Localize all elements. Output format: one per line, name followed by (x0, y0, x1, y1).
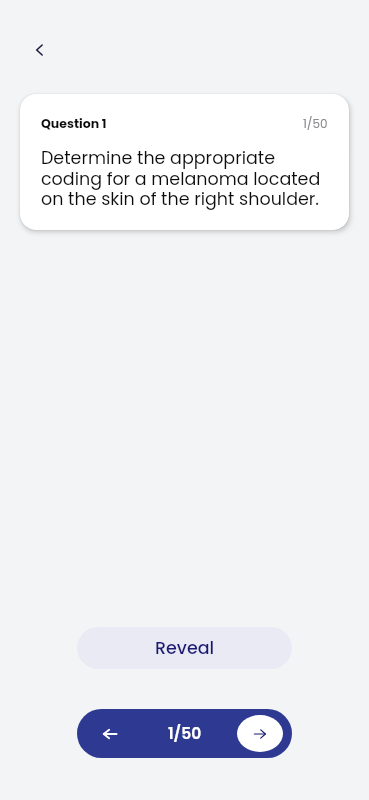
staticText: 1/50 (303, 115, 328, 132)
button[interactable]: Reveal (77, 627, 292, 669)
button[interactable]: Back (22, 32, 58, 68)
button[interactable]: Next question (227, 709, 292, 758)
staticText: Reveal (155, 636, 215, 661)
button[interactable]: Question 1 (20, 94, 349, 230)
staticText: Determine the appropriate coding for a m… (41, 146, 321, 211)
staticText: Question 1 (41, 115, 107, 132)
button[interactable]: Previous question (77, 709, 142, 758)
staticText: 1/50 (168, 723, 202, 745)
